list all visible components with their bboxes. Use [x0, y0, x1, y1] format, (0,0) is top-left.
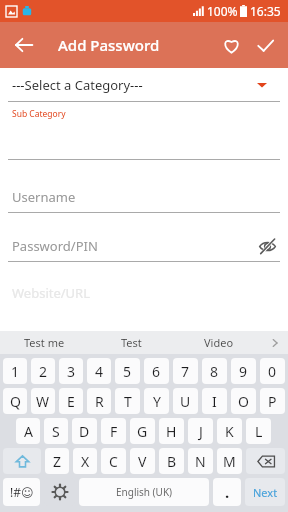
staticText: Username [12, 188, 76, 206]
staticText: N [195, 452, 206, 471]
button[interactable]: B [159, 448, 184, 474]
staticText: 3 [67, 362, 76, 381]
staticText: K [225, 422, 234, 441]
button[interactable]: F [101, 418, 126, 444]
button[interactable]: V [130, 448, 155, 474]
button[interactable]: O [231, 388, 256, 414]
button[interactable]: 9 [231, 358, 256, 384]
button[interactable]: N [188, 448, 213, 474]
staticText: U [180, 392, 191, 411]
staticText: 8 [210, 362, 219, 381]
button[interactable]: M [217, 448, 242, 474]
button[interactable]: Video [175, 331, 262, 354]
button[interactable]: 3 [59, 358, 83, 384]
staticText: 1 [11, 362, 20, 381]
button[interactable]: More suggestions [262, 331, 288, 354]
button[interactable]: 8 [202, 358, 227, 384]
staticText: !#☺ [10, 484, 34, 500]
staticText: Website/URL [12, 284, 91, 300]
button[interactable]: Next [245, 478, 285, 506]
button[interactable]: R [87, 388, 111, 414]
button[interactable]: Test me [0, 331, 88, 354]
staticText: ---Select a Category--- [12, 76, 143, 94]
button[interactable]: X [73, 448, 97, 474]
button[interactable]: Password/PIN [0, 231, 288, 261]
staticText: H [166, 422, 177, 441]
staticText: Add Password [58, 35, 160, 55]
button[interactable]: ---Select a Category--- [0, 68, 288, 101]
staticText: V [138, 452, 147, 471]
staticText: Test me [24, 335, 65, 350]
staticText: 5 [123, 362, 132, 381]
button[interactable]: Save [248, 28, 282, 62]
button[interactable]: Show password [254, 233, 280, 259]
button[interactable]: P [260, 388, 285, 414]
staticText: W [36, 392, 50, 411]
button[interactable]: D [72, 418, 97, 444]
staticText: S [52, 422, 60, 441]
button[interactable]: Backspace [246, 448, 285, 474]
button[interactable]: Favorite [214, 28, 248, 62]
staticText: . [225, 482, 230, 502]
staticText: L [255, 422, 263, 441]
button[interactable]: 4 [87, 358, 111, 384]
staticText: A [24, 422, 33, 441]
button[interactable]: 7 [173, 358, 198, 384]
staticText: X [81, 452, 90, 471]
staticText: F [110, 422, 118, 441]
staticText: 16:35 [250, 3, 281, 19]
staticText: Video [204, 335, 234, 350]
button[interactable]: Symbols [3, 478, 40, 506]
staticText: 9 [239, 362, 248, 381]
button[interactable]: 6 [144, 358, 169, 384]
button[interactable]: Y [144, 388, 169, 414]
button[interactable]: E [59, 388, 83, 414]
staticText: 4 [95, 362, 104, 381]
staticText: M [223, 452, 236, 471]
button[interactable]: U [173, 388, 198, 414]
staticText: T [124, 392, 132, 411]
button[interactable]: Back [6, 27, 42, 63]
button[interactable]: Space [79, 478, 209, 506]
staticText: R [95, 392, 104, 411]
button[interactable]: C [101, 448, 126, 474]
staticText: G [137, 422, 148, 441]
staticText: Q [10, 392, 21, 411]
staticText: English (UK) [116, 485, 173, 499]
staticText: Sub Category [12, 108, 66, 120]
button[interactable]: G [130, 418, 155, 444]
button[interactable]: S [44, 418, 68, 444]
button[interactable]: J [188, 418, 213, 444]
button[interactable]: 2 [31, 358, 55, 384]
button[interactable]: W [31, 388, 55, 414]
button[interactable]: A [16, 418, 40, 444]
staticText: 100% [207, 3, 238, 19]
button[interactable]: 5 [115, 358, 140, 384]
staticText: Next [253, 485, 278, 500]
staticText: Y [153, 392, 161, 411]
button[interactable]: 1 [3, 358, 27, 384]
staticText: P [268, 392, 277, 411]
button[interactable]: I [202, 388, 227, 414]
button[interactable]: Test [88, 331, 175, 354]
button[interactable]: T [115, 388, 140, 414]
staticText: C [109, 452, 118, 471]
staticText: J [199, 422, 203, 441]
staticText: E [67, 392, 75, 411]
staticText: Password/PIN [12, 237, 98, 255]
staticText: Test [121, 335, 142, 350]
button[interactable]: Username [0, 182, 288, 212]
button[interactable]: . [213, 478, 241, 506]
button[interactable]: L [246, 418, 271, 444]
button[interactable]: Q [3, 388, 27, 414]
button[interactable]: Z [45, 448, 69, 474]
button[interactable]: K [217, 418, 242, 444]
button[interactable]: Settings [44, 478, 75, 506]
button[interactable]: H [159, 418, 184, 444]
staticText: D [79, 422, 90, 441]
button[interactable]: 0 [260, 358, 285, 384]
staticText: 0 [268, 362, 277, 381]
button[interactable]: Shift [3, 448, 41, 474]
staticText: Z [53, 452, 62, 471]
